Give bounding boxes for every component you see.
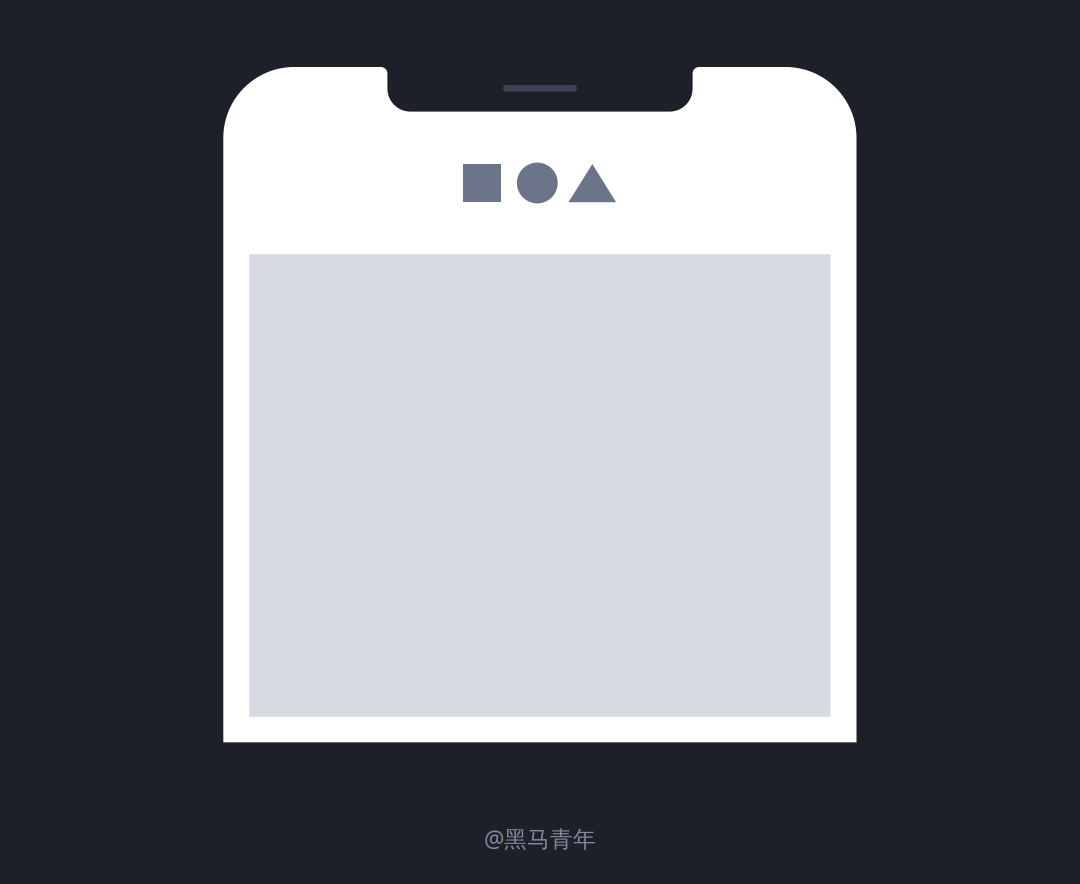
button[interactable]: Triangle tool (568, 164, 616, 202)
staticText: @黑马青年 (484, 823, 596, 854)
button[interactable]: Circle tool (517, 163, 558, 203)
